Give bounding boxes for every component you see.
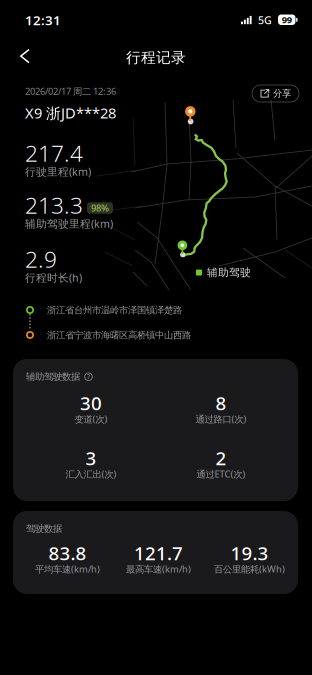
staticText: 行程时长(h): [25, 270, 82, 285]
staticText: 浙江省宁波市海曙区高桥镇中山西路: [47, 329, 191, 341]
staticText: 12:31: [25, 11, 61, 29]
staticText: 辅助驾驶数据: [26, 371, 80, 382]
staticText: 3: [85, 446, 96, 470]
staticText: 98%: [91, 202, 109, 214]
staticText: 213.3: [25, 190, 83, 220]
staticText: 分享: [273, 88, 291, 99]
staticText: 行驶里程(km): [25, 164, 91, 179]
staticText: 行程记录: [126, 48, 186, 66]
staticText: 19.3: [230, 541, 268, 565]
staticText: 83.8: [48, 541, 86, 565]
staticText: 辅助驾驶: [207, 266, 251, 279]
staticText: 2026/02/17 周二 12:36: [25, 85, 116, 97]
staticText: 驾驶数据: [26, 523, 62, 534]
staticText: 2.9: [25, 244, 57, 274]
staticText: X9 浙JD***28: [25, 103, 116, 123]
staticText: 变道(次): [74, 413, 107, 425]
staticText: 通过路口(次): [195, 413, 246, 425]
staticText: 121.7: [134, 541, 183, 565]
button[interactable]: 分享: [252, 85, 299, 102]
staticText: 8: [215, 391, 226, 415]
staticText: 30: [80, 391, 102, 415]
button[interactable]: 返回: [8, 42, 42, 76]
staticText: 通过ETC(次): [196, 468, 245, 480]
staticText: 百公里能耗(kWh): [214, 563, 285, 575]
staticText: 汇入汇出(次): [65, 468, 116, 480]
staticText: 辅助驾驶里程(km): [25, 216, 113, 231]
staticText: 5G: [258, 13, 272, 27]
staticText: 99: [282, 14, 292, 26]
staticText: 2: [215, 446, 226, 470]
staticText: ?: [87, 372, 90, 381]
staticText: 浙江省台州市温岭市泽国镇泽楚路: [47, 304, 182, 316]
staticText: 平均车速(km/h): [35, 563, 100, 575]
staticText: 217.4: [25, 138, 83, 168]
staticText: 最高车速(km/h): [126, 563, 191, 575]
